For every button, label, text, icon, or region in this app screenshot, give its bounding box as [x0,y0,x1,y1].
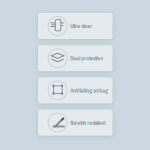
button[interactable]: Ultra clear [38,13,112,39]
staticText: Anti falling airbag [70,86,108,94]
staticText: Ultra clear [70,22,92,30]
button[interactable]: Anti falling airbag [38,77,112,103]
button[interactable]: Scratch resistant [38,110,112,136]
button[interactable]: Dual protection [38,45,112,71]
staticText: Scratch resistant [70,119,105,126]
staticText: Dual protection [70,54,103,62]
